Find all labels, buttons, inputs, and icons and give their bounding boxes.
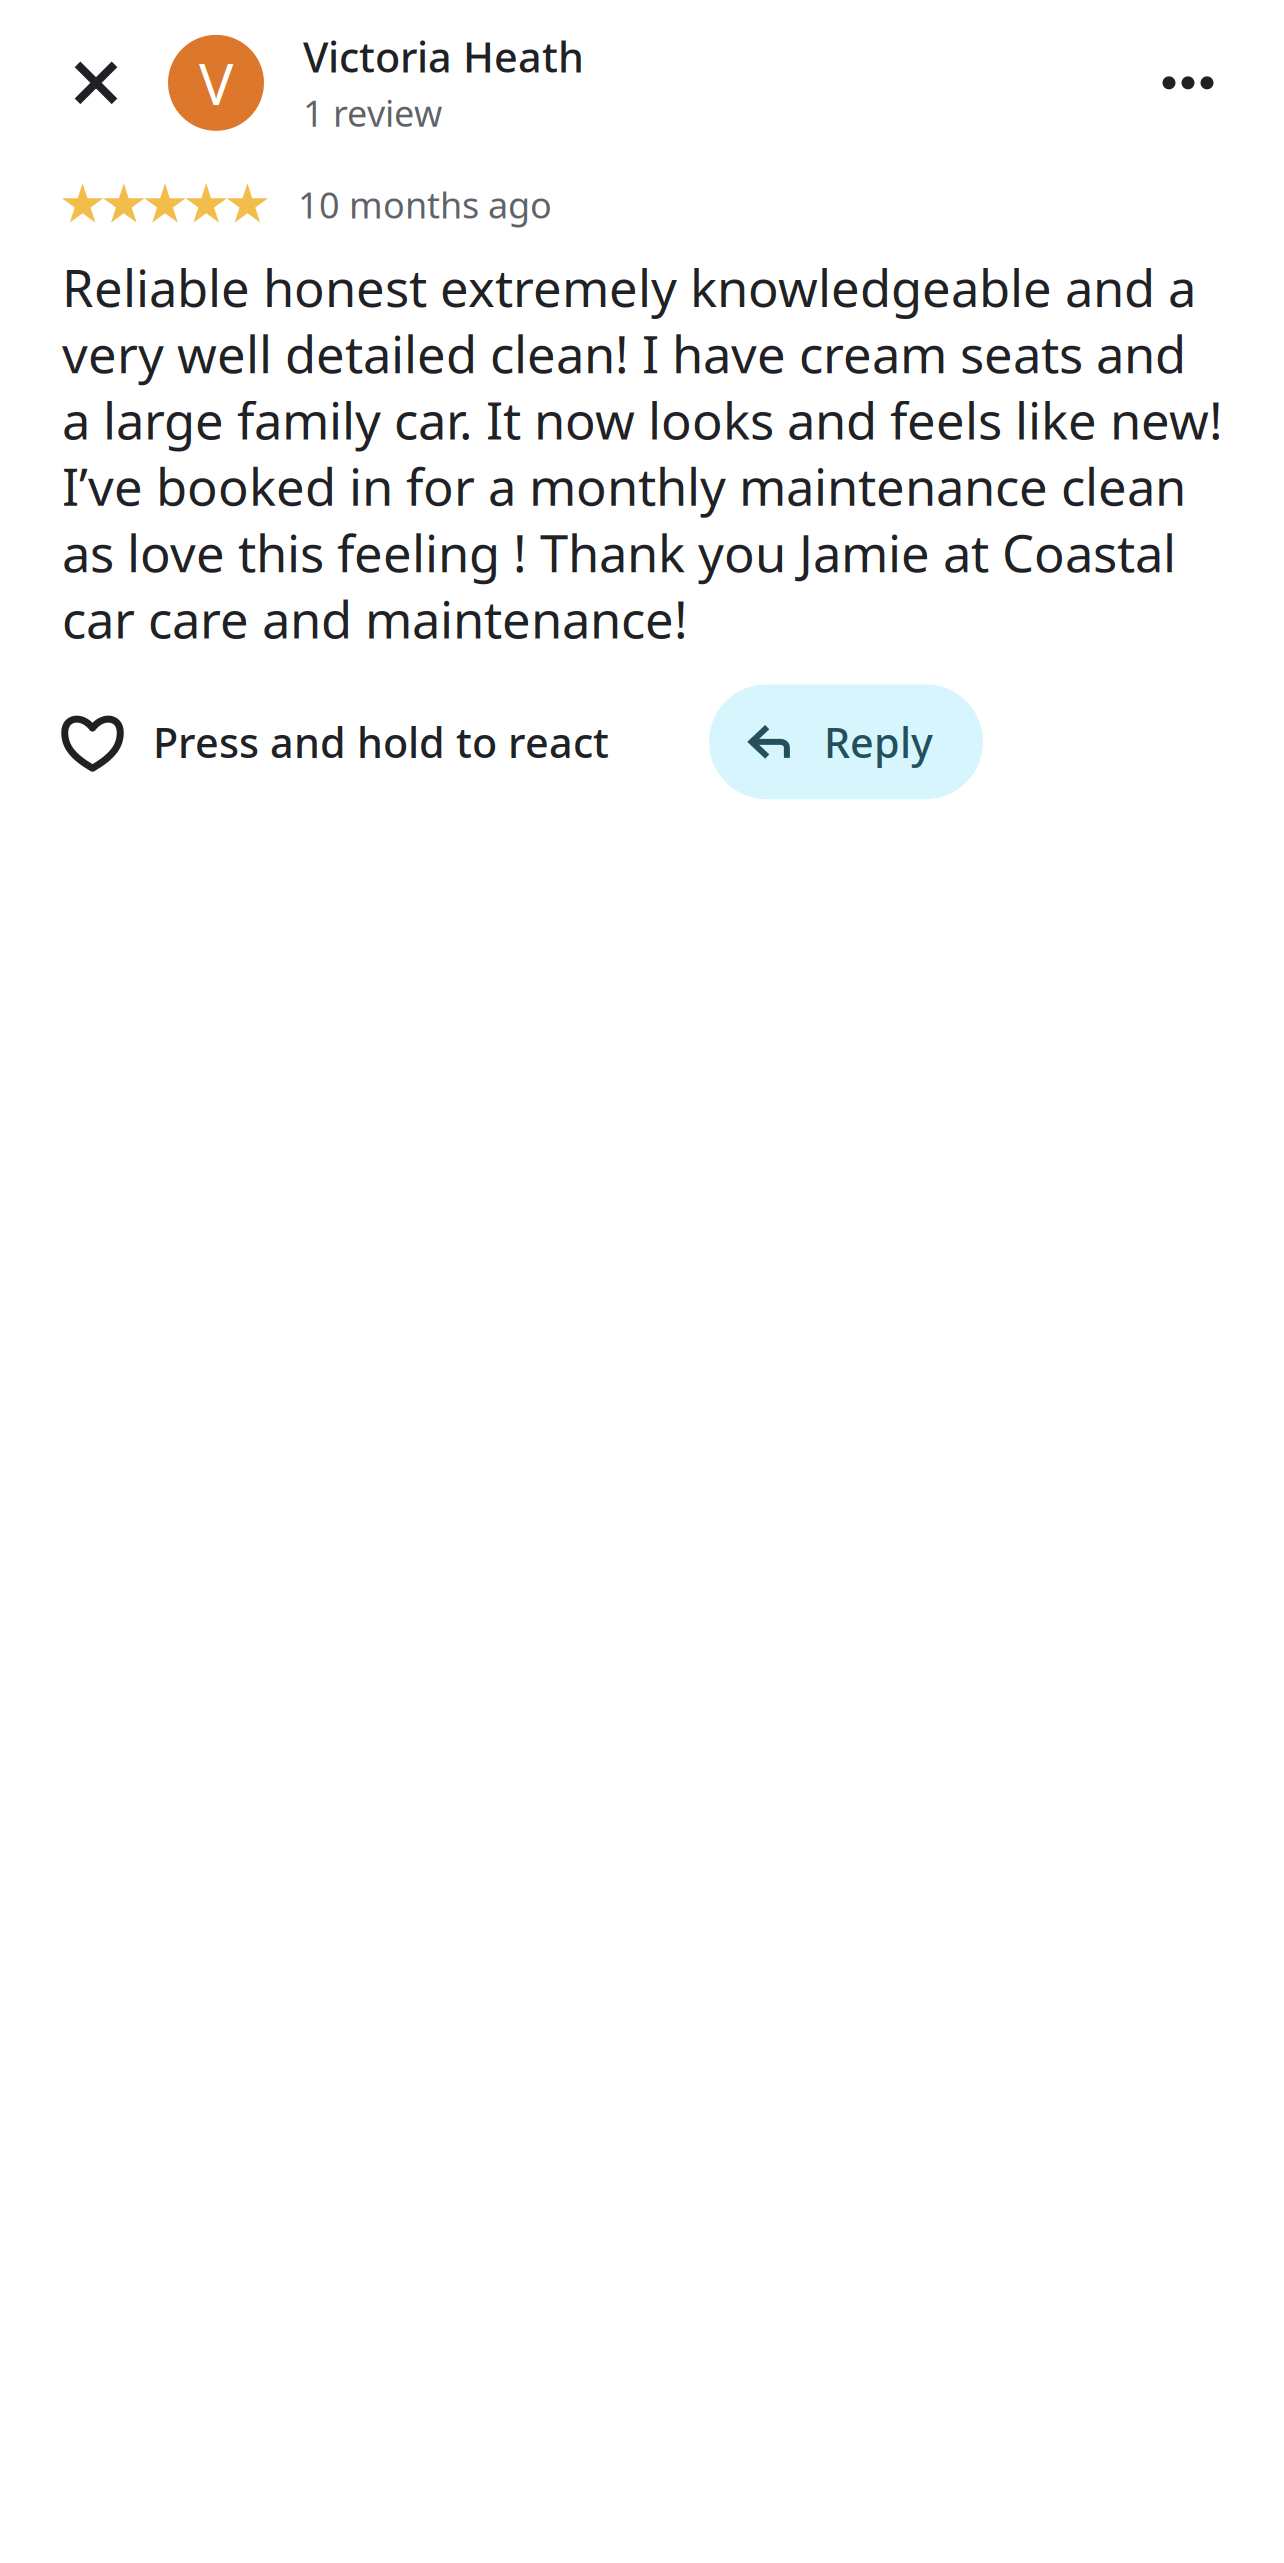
staticText: Reply (824, 714, 933, 769)
button[interactable]: Press and hold to react (62, 685, 609, 798)
staticText: V (199, 45, 233, 121)
button[interactable]: More options (1140, 35, 1236, 131)
staticText: Victoria Heath (303, 29, 584, 84)
staticText: Reliable honest extremely knowledgeable … (62, 254, 1223, 652)
button[interactable]: Reply (709, 684, 983, 799)
staticText: 10 months ago (298, 181, 552, 228)
staticText: 1 review (303, 89, 442, 137)
button[interactable]: Close (48, 35, 144, 131)
staticText: Press and hold to react (153, 714, 609, 769)
